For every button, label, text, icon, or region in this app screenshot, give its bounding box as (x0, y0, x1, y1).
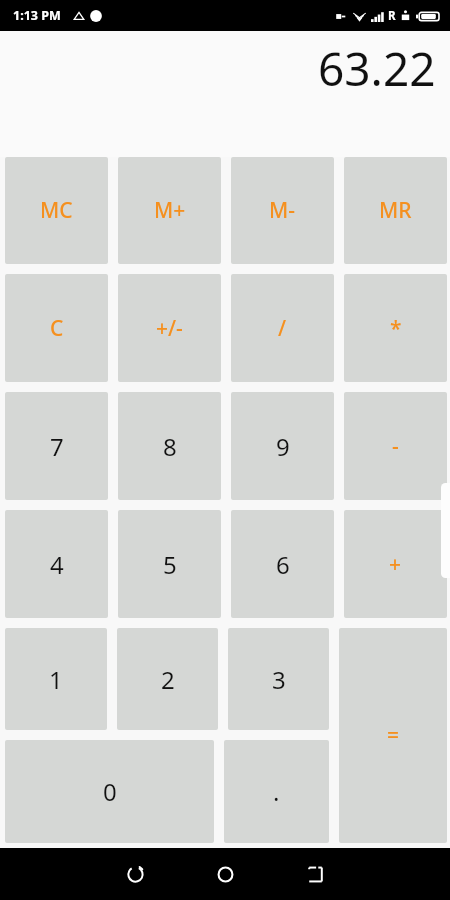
staticText: 8 (163, 430, 177, 463)
staticText: = (387, 721, 400, 750)
staticText: + (389, 550, 402, 579)
staticText: 4 (50, 548, 64, 581)
button[interactable]: 8 (118, 392, 221, 500)
button[interactable]: Recents (270, 848, 360, 900)
staticText: 5 (163, 548, 177, 581)
button[interactable]: 6 (231, 510, 334, 618)
staticText: * (390, 314, 402, 343)
staticText: M+ (154, 196, 186, 225)
button[interactable]: 4 (5, 510, 108, 618)
button[interactable]: M+ (118, 157, 221, 264)
staticText: 0 (103, 775, 117, 808)
staticText: C (50, 314, 64, 343)
staticText: M- (269, 196, 296, 225)
button[interactable]: 9 (231, 392, 334, 500)
staticText: MC (40, 196, 73, 225)
staticText: R (388, 8, 396, 24)
staticText: 1:13 PM (13, 7, 61, 24)
button[interactable]: MC (5, 157, 108, 264)
button[interactable]: C (5, 274, 108, 382)
button[interactable]: 1 (5, 628, 107, 730)
button[interactable]: Back (90, 848, 180, 900)
staticText: 63.22 (318, 37, 436, 100)
button[interactable]: = (339, 628, 447, 843)
button[interactable]: 0 (5, 740, 214, 843)
button[interactable]: Home (180, 848, 270, 900)
button[interactable]: +/- (118, 274, 221, 382)
staticText: 9 (276, 430, 290, 463)
button[interactable]: 7 (5, 392, 108, 500)
staticText: 3 (272, 663, 286, 696)
button[interactable]: M- (231, 157, 334, 264)
button[interactable]: - (344, 392, 447, 500)
staticText: 1 (49, 663, 63, 696)
button[interactable]: / (231, 274, 334, 382)
staticText: MR (379, 196, 412, 225)
button[interactable]: . (224, 740, 329, 843)
button[interactable]: MR (344, 157, 447, 264)
staticText: 7 (50, 430, 64, 463)
staticText: . (273, 775, 280, 808)
staticText: 6 (276, 548, 290, 581)
staticText: +/- (156, 314, 183, 343)
button[interactable]: * (344, 274, 447, 382)
button[interactable]: + (344, 510, 447, 618)
button[interactable]: 2 (117, 628, 218, 730)
button[interactable]: 3 (228, 628, 329, 730)
staticText: - (392, 432, 399, 461)
staticText: 2 (161, 663, 175, 696)
staticText: / (278, 314, 287, 343)
button[interactable]: 5 (118, 510, 221, 618)
